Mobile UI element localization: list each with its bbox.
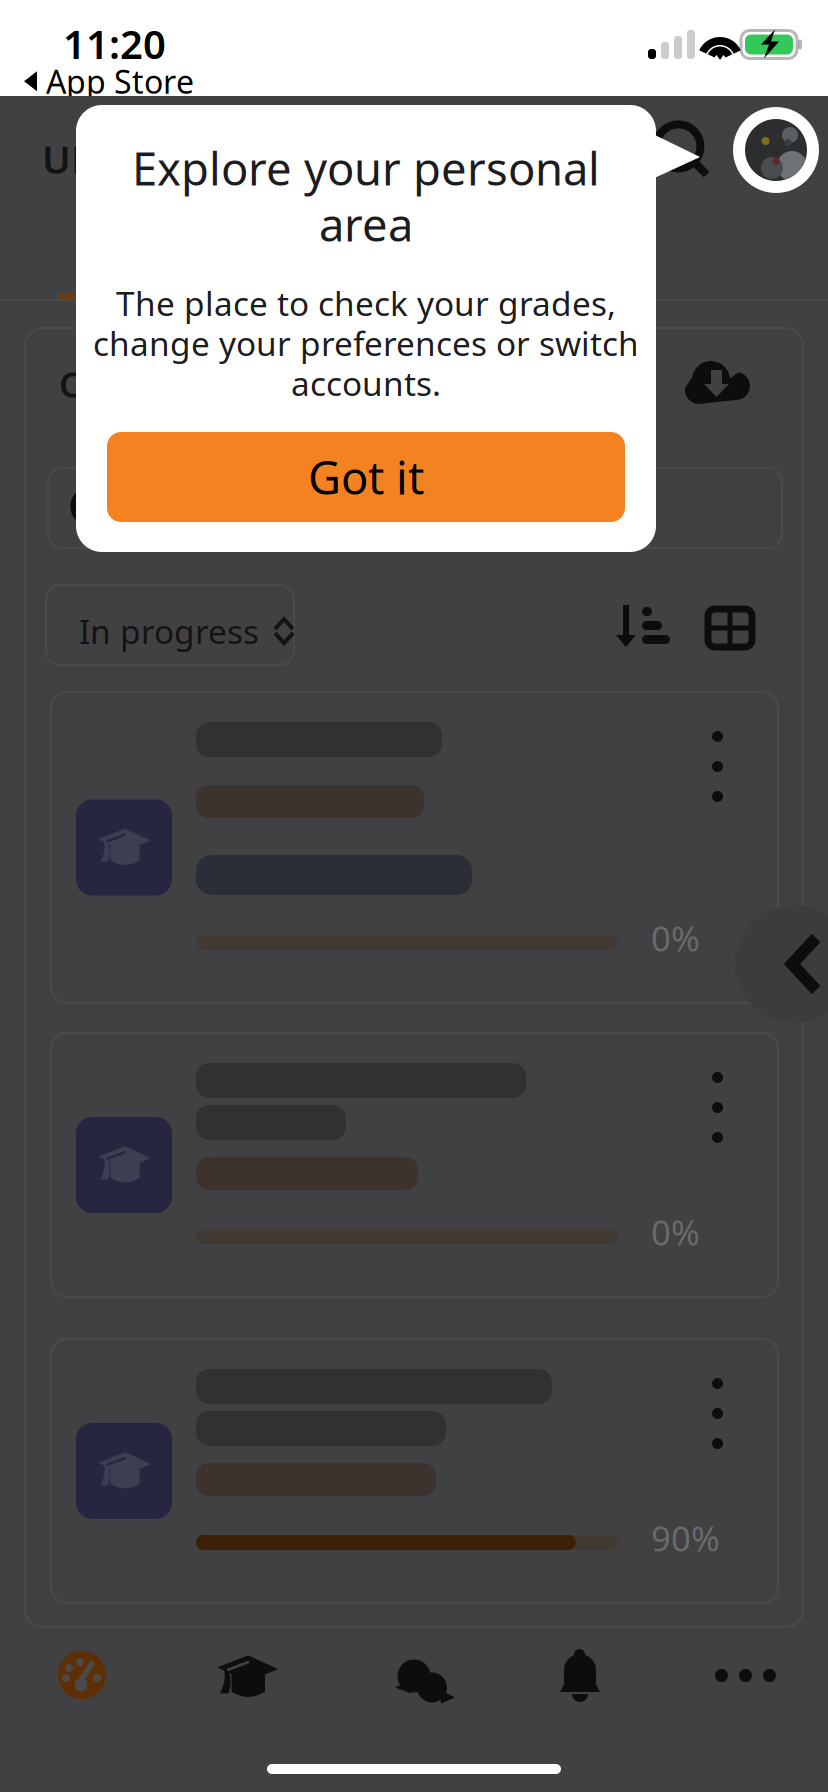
staticText: In progress <box>79 609 259 653</box>
button[interactable]: Got it <box>107 432 625 522</box>
button[interactable]: In progress <box>0 96 248 176</box>
staticText: The place to check your grades, <box>116 281 616 325</box>
button[interactable]: Back <box>0 96 118 214</box>
staticText: 0% <box>651 1209 700 1255</box>
button[interactable]: Profile <box>0 96 86 182</box>
staticText: area <box>319 194 413 254</box>
staticText: Courses <box>59 361 193 407</box>
button[interactable]: Notifications <box>0 96 48 154</box>
button[interactable]: 0% <box>51 1033 778 1297</box>
staticText: Got it <box>308 447 424 507</box>
staticText: 90% <box>651 1515 720 1561</box>
staticText: 0% <box>651 915 700 961</box>
staticText: accounts. <box>291 361 441 405</box>
button[interactable]: 90% <box>51 1339 778 1603</box>
button[interactable]: 0% <box>51 692 778 1003</box>
staticText: 11:20 <box>63 17 166 70</box>
staticText: App Store <box>46 60 194 102</box>
staticText: change your preferences or switch <box>93 321 639 365</box>
staticText: UNIVERSITY <box>42 133 267 184</box>
staticText: Explore your personal <box>132 138 600 198</box>
